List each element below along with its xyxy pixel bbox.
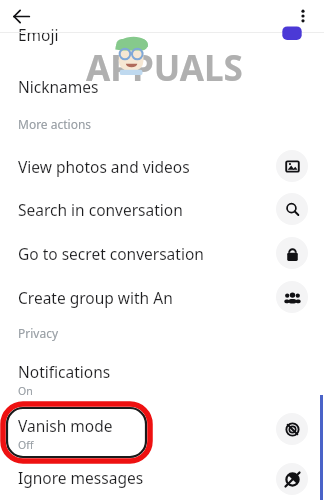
staticText: Vanish mode: [18, 415, 113, 436]
button[interactable]: Ignore messages: [0, 457, 324, 500]
button[interactable]: More options: [286, 0, 320, 32]
staticText: Emoji: [18, 24, 59, 45]
staticText: Off: [18, 438, 34, 452]
button[interactable]: Back: [4, 0, 38, 32]
other: View photos and videos: [276, 150, 308, 182]
button[interactable]: Nicknames: [0, 66, 324, 110]
button[interactable]: Notifications: [0, 353, 324, 401]
other: Create group with An: [276, 281, 308, 313]
button[interactable]: View photos and videos: [0, 144, 324, 187]
staticText: More actions: [18, 116, 92, 132]
staticText: On: [18, 384, 33, 398]
staticText: Search in conversation: [18, 199, 183, 220]
button[interactable]: Vanish mode: [0, 401, 324, 457]
other: Go to secret conversation: [276, 237, 308, 269]
button[interactable]: Go to secret conversation: [0, 231, 324, 275]
button[interactable]: Search in conversation: [0, 187, 324, 231]
other: Vanish mode: [276, 413, 308, 445]
staticText: Create group with An: [18, 287, 173, 308]
staticText: Go to secret conversation: [18, 243, 204, 264]
staticText: APPUALS: [86, 44, 243, 92]
staticText: Notifications: [18, 361, 111, 382]
staticText: View photos and videos: [18, 156, 190, 177]
staticText: Ignore messages: [18, 467, 144, 488]
staticText: Nicknames: [18, 76, 99, 97]
staticText: Privacy: [18, 325, 59, 341]
other: Ignore messages: [276, 463, 308, 495]
button[interactable]: Create group with An: [0, 275, 324, 319]
button[interactable]: Emoji: [0, 32, 324, 66]
other: Search in conversation: [276, 193, 308, 225]
